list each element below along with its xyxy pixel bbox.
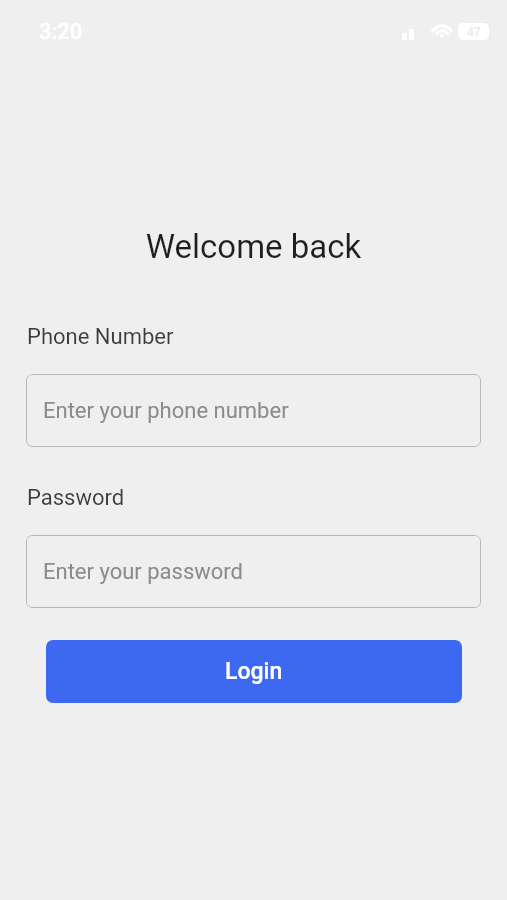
staticText: Enter your phone number [43, 398, 289, 424]
other: Wi-Fi [431, 20, 454, 42]
button[interactable]: Enter your password [26, 535, 481, 608]
button[interactable]: Enter your phone number [26, 374, 481, 447]
button[interactable]: Login [46, 640, 462, 703]
staticText: 3:20 [39, 19, 83, 45]
staticText: Welcome back [0, 227, 507, 266]
staticText: Enter your password [43, 559, 244, 585]
other: Battery 47 percent [458, 23, 489, 40]
staticText: Login [225, 658, 283, 685]
staticText: 47 [467, 25, 481, 39]
other: Cellular signal [401, 22, 417, 42]
staticText: Password [27, 485, 125, 511]
staticText: Phone Number [27, 324, 174, 350]
